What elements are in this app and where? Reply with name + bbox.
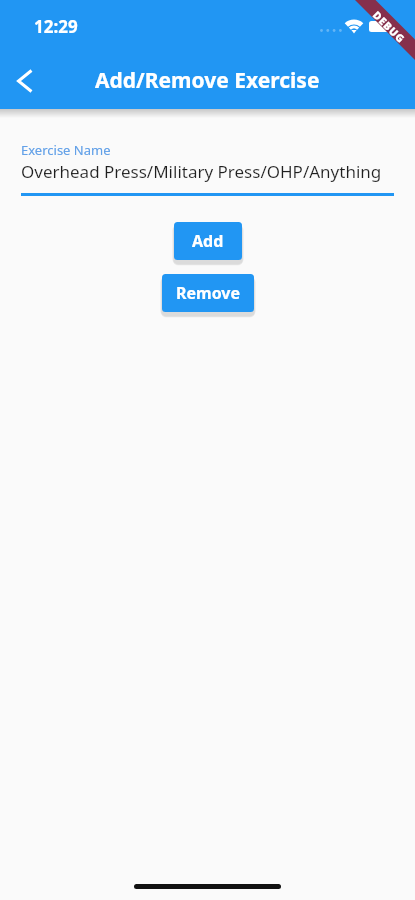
button[interactable]: Remove bbox=[162, 274, 254, 312]
staticText: 12:29 bbox=[34, 15, 78, 38]
staticText: Exercise Name bbox=[21, 141, 111, 159]
staticText: DEBUG bbox=[370, 8, 408, 46]
staticText: Overhead Press/Military Press/OHP/Anythi… bbox=[21, 160, 382, 183]
button[interactable]: Add bbox=[174, 222, 242, 260]
staticText: Add/Remove Exercise bbox=[95, 66, 320, 95]
button[interactable]: Exercise Name bbox=[0, 141, 415, 196]
button[interactable]: Back bbox=[1, 57, 49, 105]
staticText: Add bbox=[192, 230, 224, 252]
staticText: Remove bbox=[176, 282, 241, 304]
